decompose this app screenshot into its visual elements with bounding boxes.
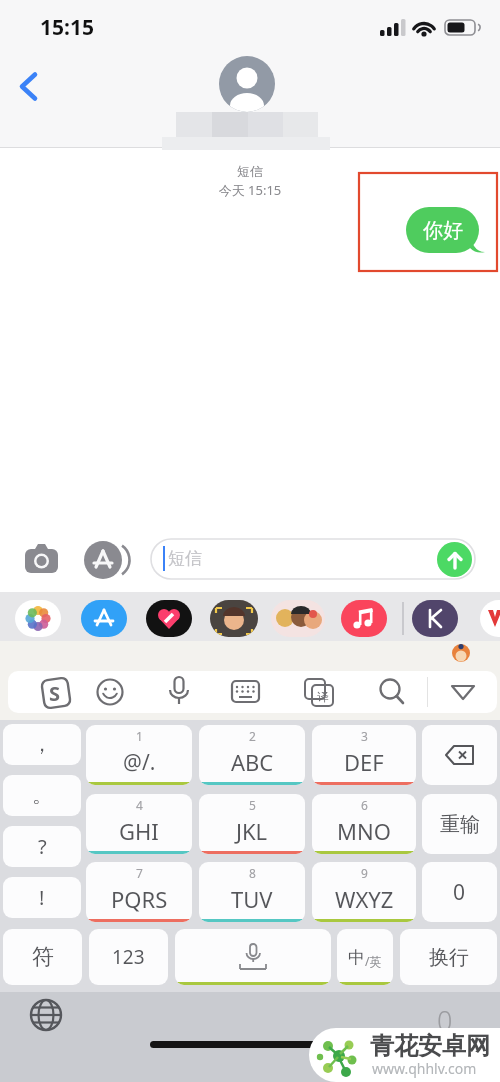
staticText: @/. bbox=[123, 748, 156, 777]
button[interactable] bbox=[437, 542, 472, 577]
button[interactable]: 换行 bbox=[400, 929, 497, 985]
staticText: GHI bbox=[119, 816, 159, 846]
staticText: www.qhhlv.com bbox=[372, 1059, 477, 1078]
staticText: /英 bbox=[365, 953, 382, 969]
button[interactable] bbox=[341, 600, 387, 637]
button[interactable] bbox=[19, 72, 39, 102]
staticText: 符 bbox=[32, 943, 54, 971]
button[interactable]: 重输 bbox=[422, 794, 497, 854]
staticText: 7 bbox=[136, 865, 143, 881]
staticText: 中 bbox=[348, 947, 365, 968]
staticText: 重输 bbox=[440, 812, 480, 837]
button[interactable]: 符 bbox=[3, 929, 82, 985]
staticText: DEF bbox=[344, 747, 384, 777]
button[interactable]: S bbox=[38, 675, 74, 711]
staticText: 今天 15:15 bbox=[0, 181, 500, 199]
button[interactable]: 你好 bbox=[406, 207, 479, 253]
staticText: 换行 bbox=[429, 945, 469, 970]
staticText: 青花安卓网 bbox=[370, 1031, 490, 1061]
staticText: 2 bbox=[249, 728, 256, 744]
button[interactable] bbox=[450, 684, 476, 702]
staticText: TUV bbox=[231, 884, 273, 914]
button[interactable]: 3 bbox=[312, 725, 416, 785]
button[interactable]: 0 bbox=[422, 862, 497, 922]
button[interactable] bbox=[28, 997, 64, 1033]
staticText: ， bbox=[32, 732, 52, 757]
staticText: ! bbox=[39, 884, 45, 911]
staticText: 0 bbox=[453, 878, 466, 907]
button[interactable]: 9 bbox=[312, 862, 416, 922]
button[interactable] bbox=[168, 676, 190, 708]
button[interactable]: 中 bbox=[337, 929, 393, 985]
staticText: 123 bbox=[112, 944, 145, 970]
staticText: MNO bbox=[337, 816, 391, 846]
button[interactable] bbox=[175, 929, 331, 985]
staticText: ? bbox=[38, 833, 47, 860]
button[interactable] bbox=[15, 600, 61, 637]
button[interactable] bbox=[480, 600, 500, 637]
staticText: 你好 bbox=[423, 218, 463, 243]
button[interactable] bbox=[231, 680, 261, 704]
button[interactable]: ? bbox=[3, 826, 81, 867]
staticText: ABC bbox=[231, 747, 274, 777]
button[interactable]: 7 bbox=[86, 862, 192, 922]
button[interactable]: ， bbox=[3, 724, 81, 765]
staticText: PQRS bbox=[111, 884, 168, 914]
button[interactable]: 2 bbox=[199, 725, 305, 785]
staticText: 短信 bbox=[168, 548, 202, 569]
staticText: 8 bbox=[249, 865, 256, 881]
button[interactable]: 123 bbox=[89, 929, 168, 985]
staticText: 3 bbox=[361, 728, 368, 744]
button[interactable] bbox=[25, 544, 58, 574]
button[interactable] bbox=[378, 678, 406, 706]
staticText: 9 bbox=[361, 865, 368, 881]
staticText: S bbox=[49, 680, 61, 707]
staticText: 15:15 bbox=[40, 13, 94, 42]
staticText: 6 bbox=[361, 797, 368, 813]
button[interactable]: 4 bbox=[86, 794, 192, 854]
staticText: 1 bbox=[136, 728, 143, 744]
staticText: 4 bbox=[136, 797, 143, 813]
button[interactable] bbox=[271, 600, 325, 637]
staticText: 0 bbox=[437, 1002, 453, 1039]
button[interactable] bbox=[422, 725, 497, 785]
staticText: 短信 bbox=[0, 163, 500, 179]
staticText: 。 bbox=[32, 783, 52, 808]
button[interactable]: ! bbox=[3, 877, 81, 918]
staticText: 译 bbox=[317, 689, 329, 704]
button[interactable]: 。 bbox=[3, 775, 81, 816]
button[interactable]: 6 bbox=[312, 794, 416, 854]
button[interactable] bbox=[81, 600, 127, 637]
staticText: WXYZ bbox=[335, 884, 394, 914]
button[interactable] bbox=[412, 600, 458, 637]
button[interactable]: 8 bbox=[199, 862, 305, 922]
button[interactable] bbox=[84, 541, 132, 579]
button[interactable]: 5 bbox=[199, 794, 305, 854]
button[interactable]: 1 bbox=[86, 725, 192, 785]
button[interactable] bbox=[150, 538, 476, 580]
staticText: 5 bbox=[249, 797, 256, 813]
button[interactable] bbox=[146, 600, 192, 637]
button[interactable] bbox=[210, 600, 258, 637]
button[interactable]: 译 bbox=[303, 678, 335, 708]
button[interactable] bbox=[96, 678, 124, 706]
staticText: JKL bbox=[236, 816, 268, 846]
